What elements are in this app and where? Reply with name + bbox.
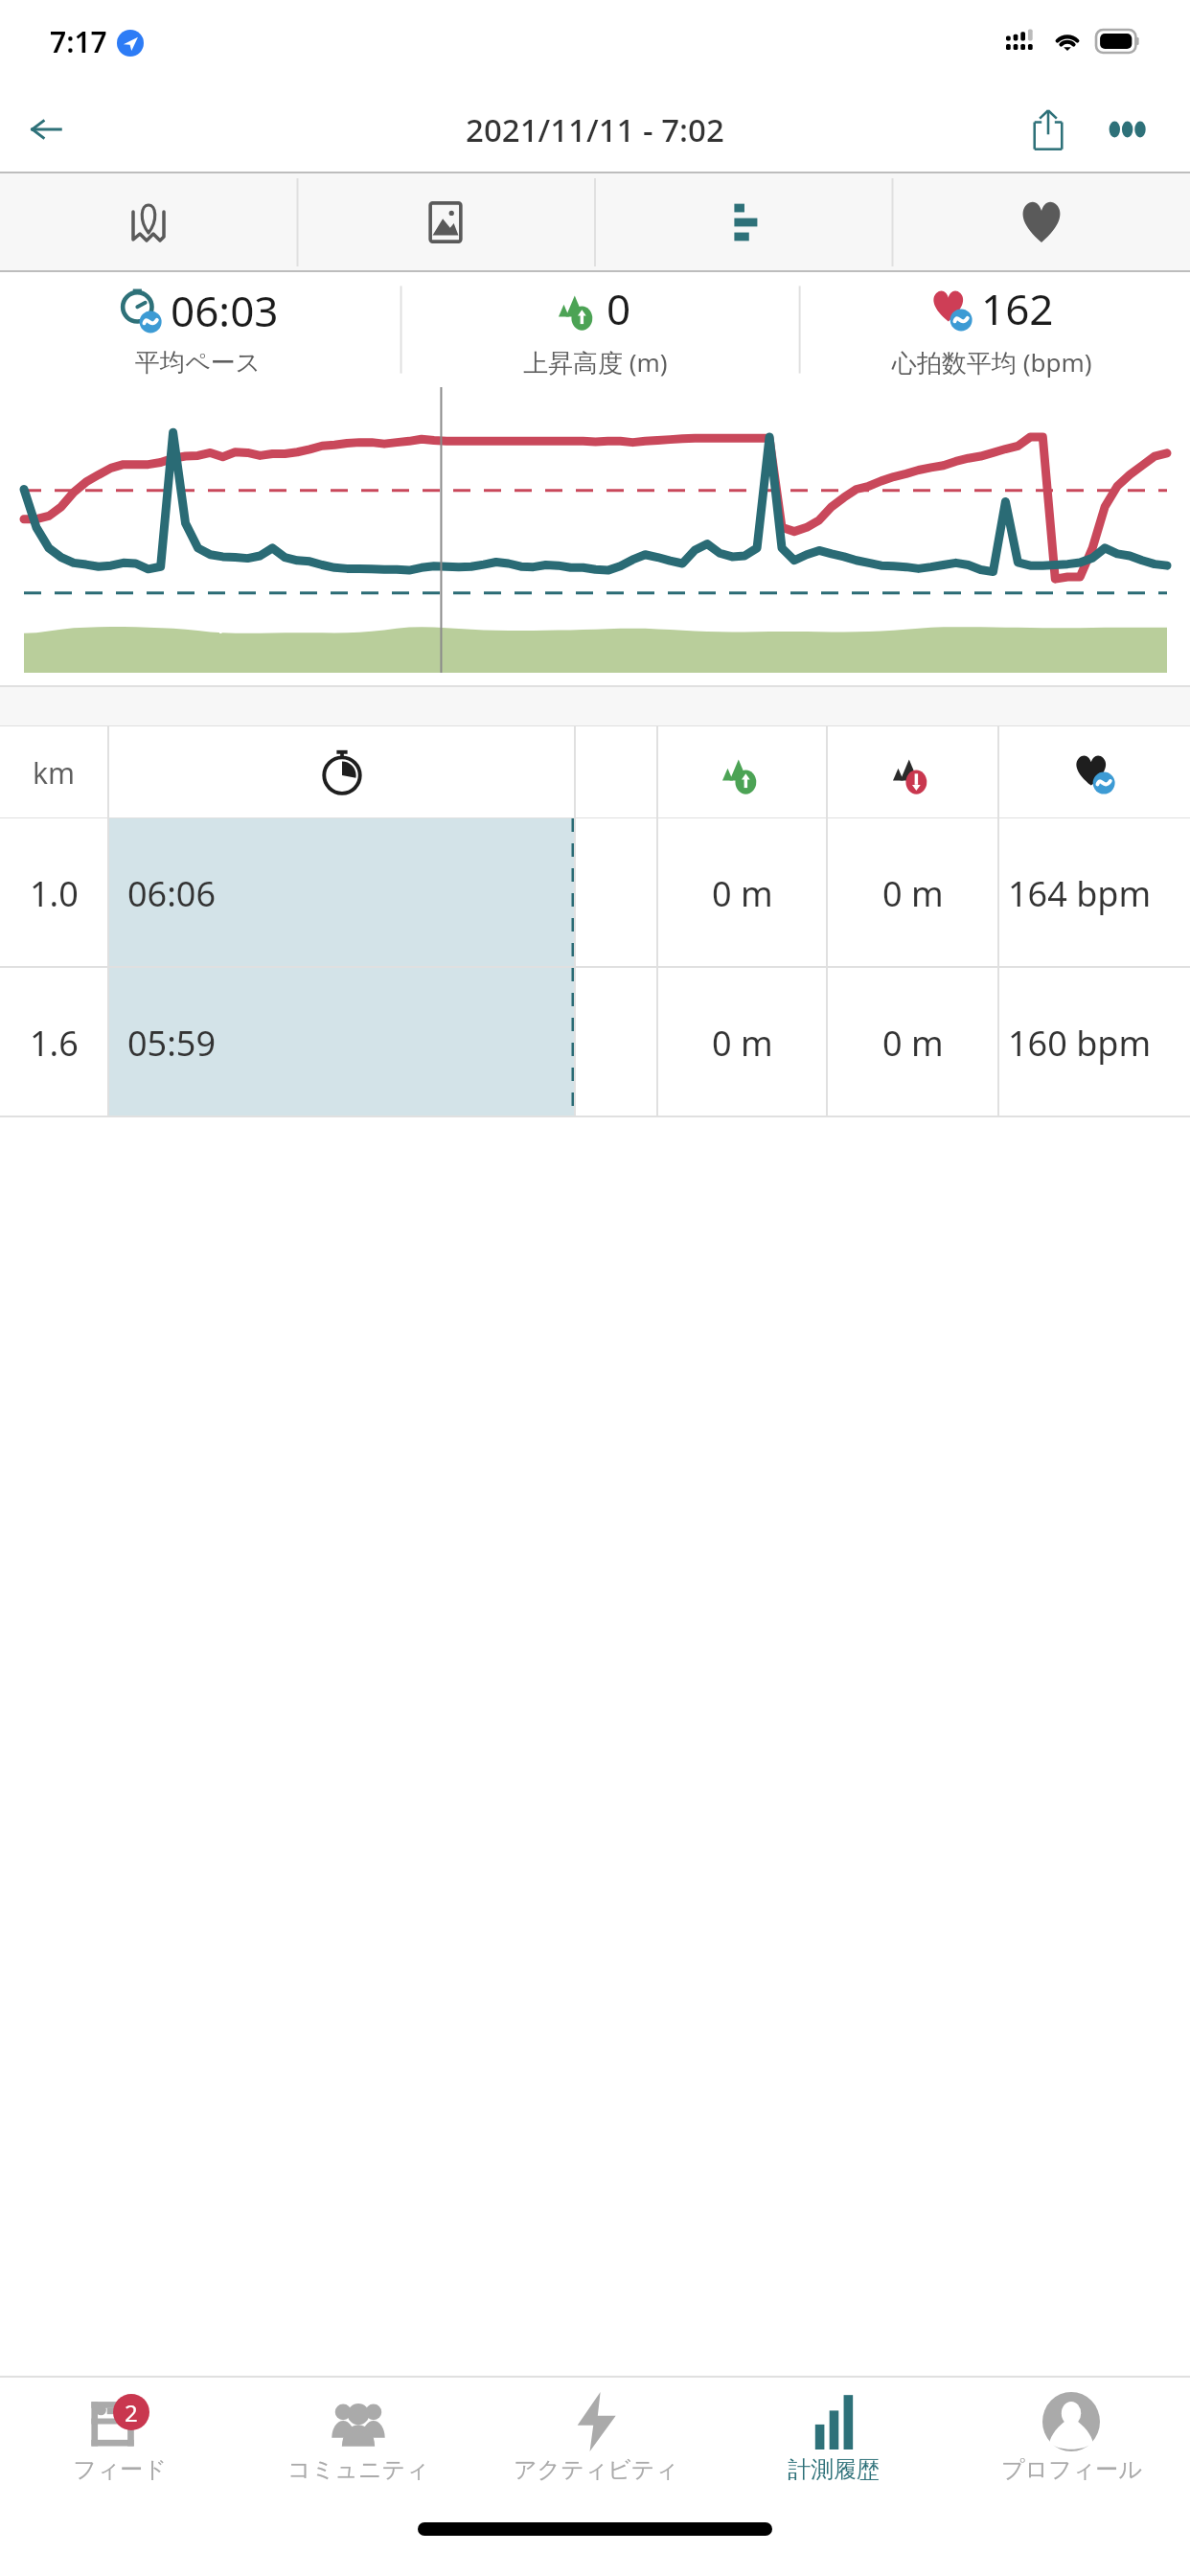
button[interactable]: Splits	[594, 172, 892, 272]
staticText: 05:59	[127, 1020, 217, 1067]
staticText: コミュニティ	[287, 2455, 429, 2484]
staticText: 1.6	[30, 1020, 79, 1067]
staticText: 0 m	[882, 1020, 944, 1067]
staticText: km	[33, 753, 76, 793]
staticText: 7:17	[50, 22, 107, 61]
staticText: フィード	[73, 2455, 167, 2484]
staticText: 平均ペース	[135, 347, 262, 379]
staticText: 上昇高度 (m)	[523, 345, 668, 379]
staticText: 0 m	[712, 1020, 773, 1067]
staticText: 0	[606, 280, 631, 337]
button[interactable]: More options	[1092, 95, 1161, 164]
staticText: 162	[981, 280, 1054, 337]
staticText: 2	[125, 2397, 138, 2428]
staticText: 06:03	[171, 282, 279, 339]
button[interactable]: Map	[0, 172, 297, 272]
staticText: 心拍数平均 (bpm)	[892, 345, 1092, 379]
button[interactable]: 1.0	[0, 818, 1190, 968]
staticText: 0 m	[882, 870, 944, 917]
staticText: プロフィール	[1001, 2455, 1142, 2484]
button[interactable]: Photos	[297, 172, 594, 272]
button[interactable]: Back	[15, 99, 77, 160]
button[interactable]: 1.6	[0, 968, 1190, 1117]
button[interactable]: プロフィール	[952, 2377, 1190, 2511]
button[interactable]: 2	[0, 2377, 239, 2511]
staticText: 計測履歴	[788, 2455, 880, 2484]
button[interactable]: Heart rate	[892, 172, 1190, 272]
button[interactable]: コミュニティ	[239, 2377, 477, 2511]
staticText: 06:06	[127, 870, 217, 917]
button[interactable]: アクティビティ	[477, 2377, 715, 2511]
staticText: 2021/11/11 - 7:02	[466, 108, 724, 151]
staticText: 1	[213, 607, 227, 640]
staticText: 1.0	[30, 870, 79, 917]
button[interactable]: 162	[793, 272, 1190, 387]
staticText: 0 m	[712, 870, 773, 917]
staticText: 164 bpm	[1008, 870, 1152, 917]
staticText: アクティビティ	[514, 2455, 678, 2484]
staticText: 160 bpm	[1008, 1020, 1152, 1067]
button[interactable]: Share	[1014, 95, 1083, 164]
button[interactable]: 計測履歴	[715, 2377, 952, 2511]
button[interactable]: 06:03	[0, 272, 397, 387]
button[interactable]: 0	[397, 272, 793, 387]
